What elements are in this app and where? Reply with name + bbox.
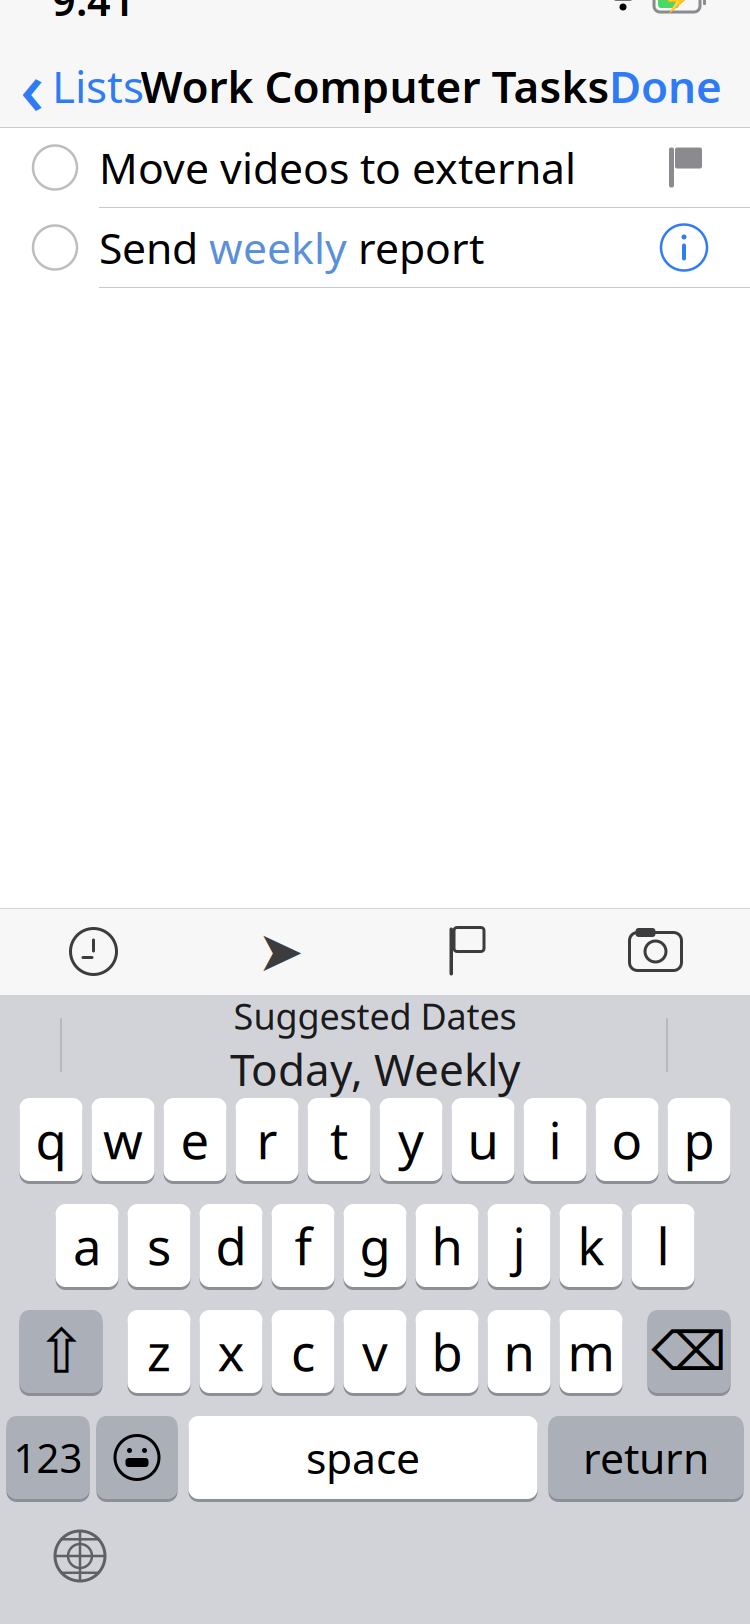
button[interactable]: Flag [374,908,561,995]
button[interactable]: Delete [647,1310,730,1396]
staticText: Done [609,57,722,115]
button[interactable]: t [307,1098,370,1184]
staticText: j [512,1212,525,1279]
staticText: i [548,1106,561,1173]
staticText: Suggested Dates [233,992,516,1040]
button[interactable]: c [271,1310,334,1396]
staticText: report [347,219,484,276]
button[interactable]: Shift [19,1310,102,1396]
button[interactable]: l [631,1204,694,1290]
button[interactable]: Remind me at a time [0,908,187,995]
staticText: d [215,1212,246,1279]
button[interactable]: Move videos to external [0,128,750,208]
staticText: r [256,1106,277,1173]
button[interactable]: Send [0,208,750,288]
staticText: v [362,1318,388,1385]
staticText: Work Computer Tasks [140,57,609,115]
staticText: h [431,1212,462,1279]
staticText: x [217,1318,244,1385]
staticText: p [683,1106,714,1173]
staticText: ➤ [257,920,304,983]
staticText: f [294,1212,311,1279]
button[interactable]: z [127,1310,190,1396]
button[interactable]: y [379,1098,442,1184]
staticText: m [567,1318,614,1385]
staticText: l [656,1212,669,1279]
button[interactable]: o [595,1098,658,1184]
staticText: e [180,1106,209,1173]
staticText: Move videos to external [99,139,576,196]
button[interactable]: s [127,1204,190,1290]
button[interactable]: v [343,1310,406,1396]
staticText: a [73,1212,101,1279]
button[interactable]: x [199,1310,262,1396]
staticText: g [359,1212,390,1279]
staticText: b [431,1318,462,1385]
button[interactable]: u [451,1098,514,1184]
button[interactable]: f [271,1204,334,1290]
staticText: ⌫ [651,1321,726,1382]
button[interactable]: r [235,1098,298,1184]
button[interactable]: b [415,1310,478,1396]
button[interactable]: ‹ [0,44,160,128]
staticText: o [611,1106,642,1173]
staticText: c [291,1318,315,1385]
staticText: ‹ [20,36,44,136]
staticText: s [147,1212,171,1279]
button[interactable]: Done [581,44,750,128]
button[interactable]: h [415,1204,478,1290]
button[interactable]: space [188,1416,537,1502]
button[interactable]: w [91,1098,154,1184]
staticText: u [467,1106,498,1173]
staticText: Send [99,219,209,276]
button[interactable]: q [19,1098,82,1184]
staticText: Lists [52,57,144,115]
staticText: y [398,1106,424,1173]
staticText: z [147,1318,171,1385]
staticText: n [503,1318,534,1385]
button[interactable]: Remind me at a location [187,908,374,995]
staticText: ⚡ [663,0,691,13]
staticText: 9:41 [52,0,135,27]
button[interactable]: Add photo [561,908,750,995]
staticText: k [577,1212,604,1279]
button[interactable]: Emoji [96,1416,177,1502]
staticText: w [103,1106,143,1173]
button[interactable]: g [343,1204,406,1290]
button[interactable]: j [487,1204,550,1290]
button[interactable]: k [559,1204,622,1290]
button[interactable]: a [55,1204,118,1290]
staticText: t [330,1106,348,1173]
staticText: q [35,1106,66,1173]
button[interactable]: Suggested Dates [196,986,554,1104]
button[interactable]: e [163,1098,226,1184]
button[interactable]: d [199,1204,262,1290]
staticText: Today, Weekly [230,1040,520,1098]
button[interactable]: m [559,1310,622,1396]
button[interactable]: return [548,1416,743,1502]
button[interactable]: Next keyboard [32,1516,128,1596]
staticText: space [306,1429,420,1486]
staticText: weekly [209,219,347,276]
button[interactable]: n [487,1310,550,1396]
button[interactable]: i [523,1098,586,1184]
staticText: ⇧ [35,1317,86,1386]
button[interactable]: p [667,1098,730,1184]
button[interactable]: 123 [6,1416,89,1502]
staticText: 123 [13,1431,82,1484]
staticText: return [583,1429,709,1486]
